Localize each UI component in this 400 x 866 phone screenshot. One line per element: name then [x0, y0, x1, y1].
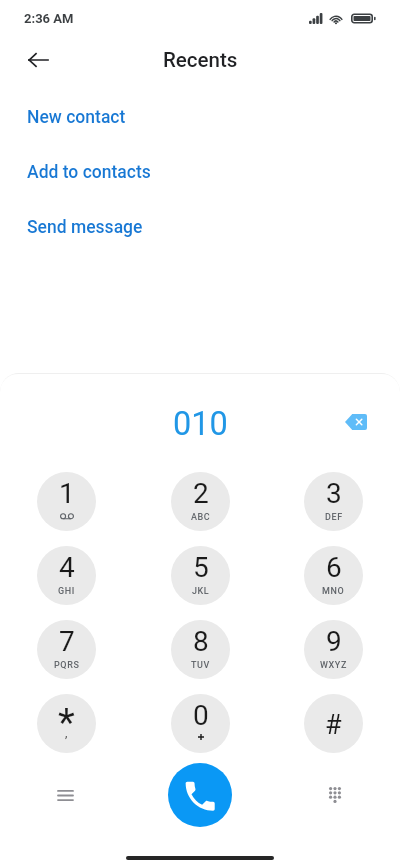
- staticText: ABC: [191, 512, 211, 523]
- staticText: TUV: [191, 660, 210, 671]
- button[interactable]: 0: [171, 694, 230, 753]
- button[interactable]: *: [37, 694, 96, 753]
- staticText: *: [58, 700, 75, 746]
- button[interactable]: 9: [304, 620, 363, 679]
- button[interactable]: Add to contacts: [0, 150, 400, 194]
- button[interactable]: #: [304, 694, 363, 753]
- staticText: New contact: [27, 107, 126, 128]
- staticText: 2:36 AM: [24, 11, 74, 26]
- button[interactable]: 6: [304, 546, 363, 605]
- staticText: 6: [326, 551, 342, 584]
- button[interactable]: Back: [17, 40, 58, 80]
- button[interactable]: Dialpad: [315, 775, 355, 815]
- button[interactable]: 8: [171, 620, 230, 679]
- staticText: Add to contacts: [27, 162, 151, 183]
- button[interactable]: 1: [37, 472, 96, 531]
- button[interactable]: 2: [171, 472, 230, 531]
- staticText: WXYZ: [320, 660, 347, 671]
- staticText: 0: [193, 699, 209, 732]
- staticText: 2: [193, 477, 209, 510]
- staticText: Send message: [27, 217, 143, 238]
- button[interactable]: 7: [37, 620, 96, 679]
- staticText: 7: [59, 625, 75, 658]
- staticText: 010: [173, 405, 228, 443]
- staticText: ,: [65, 726, 68, 740]
- staticText: MNO: [322, 586, 345, 597]
- staticText: JKL: [192, 586, 210, 597]
- staticText: 9: [326, 625, 342, 658]
- button[interactable]: 4: [37, 546, 96, 605]
- button[interactable]: Send message: [0, 205, 400, 249]
- button[interactable]: Menu: [45, 775, 85, 815]
- button[interactable]: New contact: [0, 95, 400, 139]
- staticText: DEF: [325, 512, 343, 523]
- button[interactable]: Call: [168, 763, 232, 827]
- staticText: 1: [59, 477, 75, 510]
- staticText: 4: [59, 551, 75, 584]
- staticText: #: [325, 709, 342, 741]
- staticText: Recents: [163, 48, 238, 72]
- staticText: GHI: [58, 586, 75, 597]
- button[interactable]: 3: [304, 472, 363, 531]
- staticText: PQRS: [54, 660, 80, 671]
- button[interactable]: Backspace: [336, 402, 376, 442]
- staticText: 5: [193, 551, 209, 584]
- staticText: 8: [193, 625, 209, 658]
- button[interactable]: 5: [171, 546, 230, 605]
- staticText: 3: [326, 477, 342, 510]
